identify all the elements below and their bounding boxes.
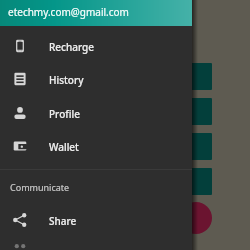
staticText: Recharge (49, 40, 95, 54)
button[interactable]: Share (0, 204, 192, 237)
button[interactable] (0, 233, 192, 250)
staticText: History (49, 73, 84, 87)
button[interactable]: Add (180, 202, 212, 234)
staticText: Communicate (10, 181, 70, 193)
staticText: Share (49, 214, 77, 228)
button[interactable]: History (0, 63, 192, 96)
staticText: Profile (49, 107, 80, 121)
button[interactable]: Recharge (0, 30, 192, 63)
button[interactable]: Profile (0, 97, 192, 130)
staticText: etechmy.com@gmail.com (8, 5, 129, 19)
button[interactable]: Wallet (0, 130, 192, 163)
staticText: Wallet (49, 140, 79, 154)
